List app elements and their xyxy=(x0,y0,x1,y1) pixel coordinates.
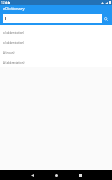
button[interactable]: A (abbreviation) xyxy=(0,58,112,68)
staticText: eDictionary xyxy=(3,6,25,11)
staticText: A (abbreviation) xyxy=(3,61,25,65)
button[interactable] xyxy=(3,14,102,23)
staticText: A (noun) xyxy=(3,51,15,55)
staticText: a (abbreviation) xyxy=(3,41,25,45)
button[interactable]: Search xyxy=(101,14,110,23)
button[interactable]: Home xyxy=(50,170,62,180)
staticText: a (abbreviation) xyxy=(3,31,25,35)
button[interactable]: a (abbreviation) xyxy=(0,38,112,48)
button[interactable]: A (noun) xyxy=(0,48,112,58)
button[interactable]: a (abbreviation) xyxy=(0,28,112,38)
staticText: 12:14 xyxy=(1,1,10,5)
button[interactable]: Recent apps xyxy=(74,170,86,180)
button[interactable]: Back xyxy=(26,170,38,180)
